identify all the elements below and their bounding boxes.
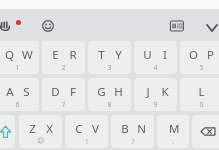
staticText: K	[161, 84, 169, 100]
staticText: 2	[61, 63, 66, 73]
staticText: .	[172, 137, 174, 147]
button[interactable]: B	[111, 115, 154, 148]
staticText: 4	[153, 63, 158, 73]
staticText: F	[70, 84, 76, 100]
button[interactable]: Gesture typing	[0, 15, 16, 37]
button[interactable]: M	[157, 115, 189, 148]
staticText: L	[198, 84, 205, 100]
button[interactable]: A	[0, 78, 39, 111]
button[interactable]: Z	[19, 115, 62, 148]
staticText: G	[97, 84, 106, 100]
staticText: 8	[107, 100, 112, 110]
staticText: !	[86, 137, 88, 147]
staticText: H	[114, 84, 123, 100]
staticText: Y	[115, 47, 122, 63]
staticText: P	[207, 47, 214, 63]
staticText: 7	[61, 100, 66, 110]
staticText: 6	[15, 100, 20, 110]
button[interactable]: J	[134, 78, 177, 111]
staticText: E	[52, 47, 59, 63]
staticText: T	[98, 47, 105, 63]
button[interactable]: Switch keyboard	[166, 15, 188, 37]
button[interactable]: D	[42, 78, 85, 111]
staticText: W	[22, 47, 31, 63]
button[interactable]: Shift	[0, 115, 15, 148]
button[interactable]: G	[88, 78, 131, 111]
staticText: O	[189, 47, 198, 63]
staticText: 0	[199, 100, 204, 110]
staticText: 5	[199, 63, 204, 73]
staticText: X	[46, 121, 53, 137]
staticText: Z	[29, 121, 36, 137]
staticText: ☺	[37, 137, 45, 145]
button[interactable]: T	[88, 41, 131, 74]
staticText: C	[75, 121, 83, 137]
button[interactable]: Backspace	[192, 115, 219, 148]
staticText: V	[92, 121, 99, 137]
button[interactable]: L	[180, 78, 219, 111]
button[interactable]: O	[180, 41, 219, 74]
staticText: J	[146, 84, 150, 100]
button[interactable]: Hide keyboard	[201, 17, 219, 39]
button[interactable]: U	[134, 41, 177, 74]
staticText: U	[143, 47, 152, 63]
staticText: N	[137, 121, 146, 137]
button[interactable]: E	[42, 41, 85, 74]
staticText: ?	[131, 137, 135, 147]
button[interactable]: Q	[0, 41, 39, 74]
staticText: R	[69, 47, 77, 63]
staticText: 3	[107, 63, 112, 73]
staticText: 9	[153, 100, 158, 110]
staticText: D	[51, 84, 60, 100]
staticText: I	[163, 47, 167, 63]
button[interactable]: C	[65, 115, 108, 148]
staticText: M	[169, 121, 178, 137]
staticText: 1	[15, 63, 20, 73]
staticText: Q	[5, 47, 14, 63]
staticText: A	[6, 84, 14, 100]
staticText: B	[121, 121, 129, 137]
button[interactable]: Emoji	[37, 15, 59, 37]
staticText: S	[23, 84, 30, 100]
